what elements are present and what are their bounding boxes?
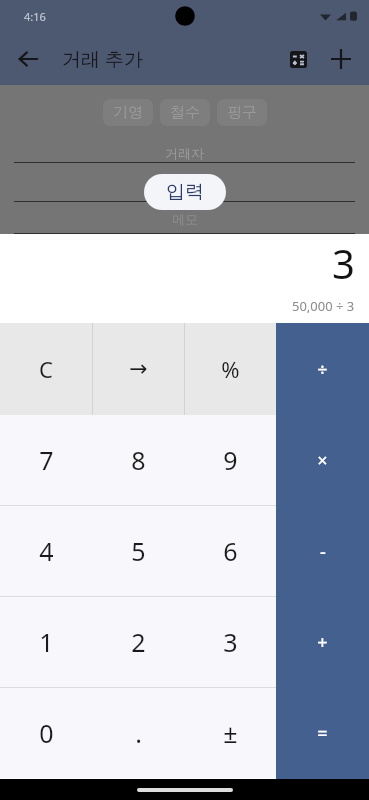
staticText: +: [317, 630, 328, 655]
button[interactable]: 1: [0, 597, 92, 687]
button[interactable]: 입력: [144, 174, 226, 210]
staticText: 5: [131, 534, 146, 568]
button[interactable]: +: [276, 597, 369, 688]
button[interactable]: 3: [184, 597, 276, 687]
button[interactable]: C: [0, 323, 92, 415]
staticText: .: [135, 716, 142, 750]
staticText: 거래자: [165, 145, 204, 161]
staticText: 9: [223, 443, 238, 477]
staticText: -: [320, 539, 326, 564]
staticText: ×: [317, 448, 328, 473]
button[interactable]: 5: [92, 506, 184, 596]
button[interactable]: ÷: [276, 323, 369, 415]
staticText: 2: [131, 625, 146, 659]
staticText: 8: [131, 443, 146, 477]
staticText: 7: [39, 443, 54, 477]
staticText: C: [39, 354, 53, 384]
staticText: 입력: [166, 180, 204, 204]
staticText: 3: [223, 625, 238, 659]
button[interactable]: 6: [184, 506, 276, 596]
staticText: 4:16: [24, 9, 46, 24]
button[interactable]: -: [276, 506, 369, 597]
staticText: 기영: [113, 103, 143, 122]
button[interactable]: Add: [319, 37, 363, 81]
button[interactable]: %: [185, 323, 276, 415]
staticText: →: [129, 356, 148, 382]
staticText: =: [317, 721, 328, 746]
button[interactable]: 기영: [103, 99, 153, 126]
staticText: 6: [223, 534, 238, 568]
button[interactable]: 8: [92, 415, 184, 505]
staticText: 핑구: [227, 103, 257, 122]
button[interactable]: ±: [184, 688, 276, 778]
staticText: 철수: [170, 103, 200, 122]
button[interactable]: 2: [92, 597, 184, 687]
button[interactable]: 7: [0, 415, 92, 505]
button[interactable]: →: [93, 323, 184, 415]
button[interactable]: 핑구: [217, 99, 267, 126]
button[interactable]: Calculator: [277, 38, 319, 80]
button[interactable]: 4: [0, 506, 92, 596]
button[interactable]: 9: [184, 415, 276, 505]
button[interactable]: =: [276, 688, 369, 779]
staticText: 50,000 ÷ 3: [292, 297, 355, 315]
staticText: 메모: [172, 211, 198, 227]
staticText: 4: [39, 534, 54, 568]
staticText: 거래 추가: [62, 46, 143, 72]
staticText: ±: [223, 716, 238, 750]
button[interactable]: .: [92, 688, 184, 778]
button[interactable]: 철수: [160, 99, 210, 126]
staticText: ÷: [317, 357, 328, 382]
staticText: 3: [332, 236, 355, 290]
button[interactable]: Back: [8, 39, 48, 79]
staticText: 0: [39, 716, 54, 750]
button[interactable]: 0: [0, 688, 92, 778]
staticText: 1: [39, 625, 54, 659]
staticText: %: [221, 354, 240, 384]
button[interactable]: ×: [276, 415, 369, 506]
